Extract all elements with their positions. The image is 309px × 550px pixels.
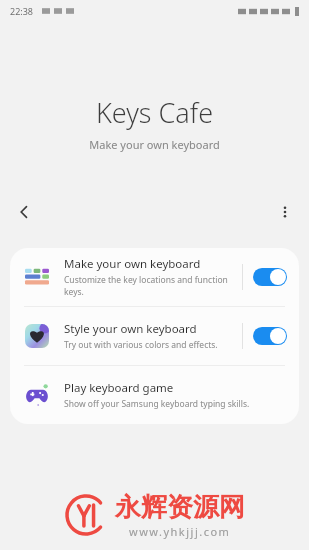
staticText: Make your own keyboard (64, 256, 201, 272)
staticText: www.yhkjjj.com (129, 524, 231, 539)
button[interactable]: Toggle (253, 325, 287, 347)
button[interactable]: Back (8, 196, 40, 228)
staticText: Try out with various colors and effects. (64, 339, 218, 351)
staticText: Keys Cafe (0, 94, 309, 131)
button[interactable]: More options (269, 196, 301, 228)
staticText: Make your own keyboard (0, 137, 309, 152)
staticText: 永辉资源网 (115, 491, 245, 524)
staticText: Show off your Samsung keyboard typing sk… (64, 398, 250, 410)
staticText: Style your own keyboard (64, 321, 197, 337)
button[interactable]: Toggle (253, 266, 287, 288)
button[interactable]: Make your own keyboard (10, 248, 299, 306)
staticText: Customize the key locations and function… (64, 274, 234, 298)
button[interactable]: Style your own keyboard (10, 307, 299, 365)
staticText: 22:38 (10, 5, 34, 17)
staticText: Play keyboard game (64, 380, 174, 396)
button[interactable]: Play keyboard game (10, 366, 299, 424)
